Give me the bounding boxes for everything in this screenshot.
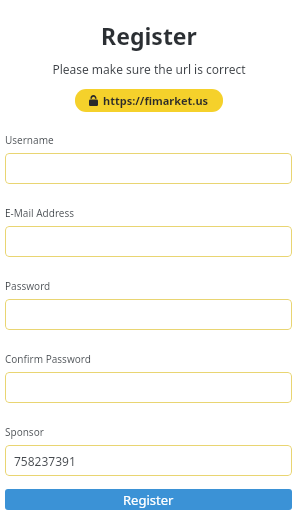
button[interactable]: Register	[5, 489, 292, 510]
button[interactable]	[5, 372, 292, 403]
staticText: E-Mail Address	[5, 206, 75, 220]
staticText: Password	[5, 279, 51, 293]
staticText: Username	[5, 133, 54, 147]
button[interactable]	[5, 299, 292, 330]
other: Secure connection	[89, 95, 98, 106]
button[interactable]	[5, 226, 292, 257]
staticText: Confirm Password	[5, 352, 91, 366]
button[interactable]: Secure connection	[75, 89, 223, 112]
staticText: https://fimarket.us	[103, 93, 209, 108]
button[interactable]: 758237391	[5, 445, 292, 476]
staticText: Sponsor	[5, 425, 44, 439]
staticText: 758237391	[14, 453, 76, 469]
staticText: Register	[123, 491, 174, 509]
button[interactable]	[5, 153, 292, 184]
staticText: Register	[101, 20, 197, 51]
staticText: Please make sure the url is correct	[52, 61, 246, 77]
